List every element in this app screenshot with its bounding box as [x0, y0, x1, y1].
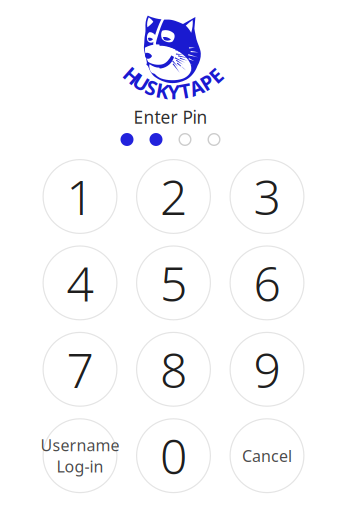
button[interactable]: 6 — [229, 245, 304, 320]
staticText: Enter Pin — [133, 105, 207, 128]
button[interactable]: 8 — [136, 332, 211, 407]
staticText: S — [146, 74, 157, 101]
staticText: H — [124, 62, 139, 89]
button[interactable]: 3 — [229, 159, 304, 234]
button[interactable]: 7 — [42, 332, 117, 407]
staticText: 8 — [160, 337, 187, 401]
staticText: U — [134, 69, 149, 96]
button[interactable]: Username — [42, 418, 117, 493]
staticText: 3 — [253, 165, 280, 228]
staticText: Username — [40, 434, 119, 456]
staticText: P — [201, 69, 213, 96]
staticText: Log-in — [56, 456, 103, 477]
button[interactable]: 5 — [136, 245, 211, 320]
staticText: K — [156, 77, 169, 104]
staticText: A — [189, 74, 203, 101]
button[interactable]: 9 — [229, 332, 304, 407]
staticText: 7 — [66, 337, 93, 401]
staticText: E — [210, 62, 221, 89]
staticText: 5 — [160, 251, 187, 315]
staticText: Cancel — [242, 445, 292, 466]
button[interactable]: 4 — [42, 245, 117, 320]
button[interactable]: 0 — [136, 418, 211, 493]
staticText: 0 — [160, 424, 187, 487]
staticText: 2 — [160, 165, 187, 228]
staticText: 4 — [66, 251, 93, 315]
button[interactable]: Cancel — [229, 418, 304, 493]
staticText: 6 — [253, 251, 280, 315]
staticText: T — [179, 77, 191, 104]
staticText: 1 — [66, 165, 93, 228]
staticText: 9 — [253, 337, 280, 401]
button[interactable]: 2 — [136, 159, 211, 234]
button[interactable]: 1 — [42, 159, 117, 234]
staticText: Y — [167, 78, 180, 105]
